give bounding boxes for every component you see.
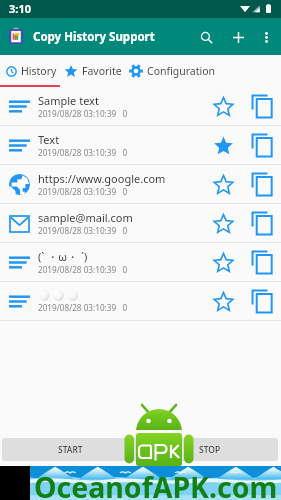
- button[interactable]: Copy: [249, 249, 275, 275]
- staticText: Text: [38, 132, 60, 147]
- button[interactable]: Copy: [249, 210, 275, 236]
- button[interactable]: Favorite: [209, 131, 237, 159]
- button[interactable]: STOP: [141, 438, 278, 461]
- button[interactable]: Copy: [249, 171, 275, 197]
- staticText: OceanofAPK.com: [34, 468, 278, 500]
- staticText: Configuration: [147, 64, 216, 78]
- button[interactable]: Favorite: [209, 248, 237, 276]
- button[interactable]: Configuration: [129, 64, 216, 78]
- button[interactable]: Copy: [249, 93, 275, 119]
- staticText: 2019/08/28 03:10:39 0: [38, 108, 128, 119]
- button[interactable]: Sample text: [0, 87, 281, 126]
- staticText: START: [58, 444, 83, 456]
- button[interactable]: Search: [191, 22, 221, 52]
- staticText: 2019/08/28 03:10:39 0: [38, 147, 128, 158]
- staticText: sample@mail.com: [38, 210, 133, 225]
- button[interactable]: Text: [0, 126, 281, 165]
- button[interactable]: https://www.google.com: [0, 165, 281, 204]
- staticText: 2019/08/28 03:10:39 0: [38, 186, 128, 197]
- button[interactable]: 2019/08/28 03:10:39 0: [0, 282, 281, 321]
- staticText: Sample text: [38, 93, 99, 108]
- button[interactable]: Add: [223, 22, 253, 52]
- staticText: STOP: [199, 444, 221, 456]
- staticText: 3:10: [9, 1, 31, 16]
- staticText: Copy History Support: [33, 29, 155, 45]
- button[interactable]: Copy: [249, 288, 275, 314]
- button[interactable]: Copy: [249, 132, 275, 158]
- button[interactable]: (` ・ω・ ´): [0, 243, 281, 282]
- button[interactable]: Favorite: [209, 209, 237, 237]
- button[interactable]: Favorite: [209, 287, 237, 315]
- staticText: (` ・ω・ ´): [38, 249, 88, 264]
- staticText: 2019/08/28 03:10:39 0: [38, 302, 128, 313]
- staticText: History: [21, 64, 57, 78]
- button[interactable]: More options: [255, 26, 277, 48]
- button[interactable]: Favorite: [209, 92, 237, 120]
- button[interactable]: History: [6, 64, 57, 78]
- staticText: Favorite: [82, 64, 122, 78]
- staticText: 2019/08/28 03:10:39 0: [38, 264, 128, 275]
- staticText: https://www.google.com: [38, 171, 166, 186]
- button[interactable]: Favorite: [209, 170, 237, 198]
- button[interactable]: Favorite: [64, 64, 122, 78]
- button[interactable]: START: [2, 438, 139, 461]
- staticText: 2019/08/28 03:10:39 0: [38, 225, 128, 236]
- button[interactable]: sample@mail.com: [0, 204, 281, 243]
